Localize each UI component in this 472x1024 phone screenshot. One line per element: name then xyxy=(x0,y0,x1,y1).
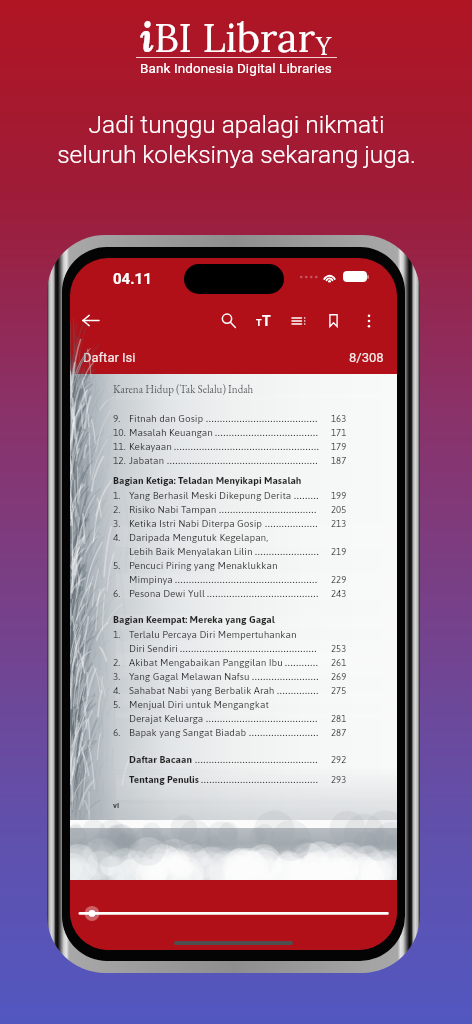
staticText: 6. xyxy=(113,588,121,599)
staticText: 2. xyxy=(113,657,121,668)
staticText: 179 xyxy=(331,441,347,452)
button[interactable]: Contents xyxy=(286,308,311,333)
staticText: Yang Gagal Melawan Nafsu xyxy=(129,671,250,682)
staticText: Kekayaan xyxy=(129,441,172,452)
button[interactable]: Bookmark xyxy=(321,308,346,333)
staticText: Pesona Dewi Yull xyxy=(129,588,205,599)
staticText: 292 xyxy=(331,754,347,765)
staticText: 04.11 xyxy=(113,270,152,288)
staticText: 9. xyxy=(113,413,121,424)
staticText: 6. xyxy=(113,727,121,738)
staticText: 1. xyxy=(113,629,121,640)
staticText: Sahabat Nabi yang Berbalik Arah xyxy=(129,685,275,696)
staticText: Bagian Ketiga: Teladan Menyikapi Masalah xyxy=(113,475,302,486)
staticText: Y xyxy=(316,31,332,62)
staticText: Masalah Keuangan xyxy=(129,427,213,438)
staticText: Menjual Diri untuk Mengangkat xyxy=(129,699,269,710)
staticText: Jabatan xyxy=(129,455,165,466)
staticText: 287 xyxy=(331,727,347,738)
staticText: Diri Sendiri xyxy=(129,643,178,654)
button[interactable]: Search xyxy=(216,308,241,333)
button[interactable]: More options xyxy=(356,308,381,333)
staticText: 10. xyxy=(113,427,126,438)
staticText: vi xyxy=(113,801,119,810)
staticText: Karena Hidup (Tak Selalu) Indah xyxy=(113,382,254,396)
staticText: Risiko Nabi Tampan xyxy=(129,504,217,515)
staticText: 229 xyxy=(331,574,347,585)
staticText: Derajat Keluarga xyxy=(129,713,204,724)
staticText: Terlalu Percaya Diri Mempertuhankan xyxy=(129,629,297,640)
staticText: Bank Indonesia Digital Libraries xyxy=(140,60,332,76)
staticText: 4. xyxy=(113,685,121,696)
staticText: 1. xyxy=(113,490,121,501)
staticText: Daripada Mengutuk Kegelapan, xyxy=(129,532,269,543)
staticText: 2. xyxy=(113,504,121,515)
staticText: 261 xyxy=(331,657,347,668)
staticText: Fitnah dan Gosip xyxy=(129,413,204,424)
staticText: 4. xyxy=(113,532,121,543)
staticText: 243 xyxy=(331,588,347,599)
staticText: 219 xyxy=(331,546,347,557)
staticText: 12. xyxy=(113,455,126,466)
staticText: Pencuci Piring yang Menaklukkan xyxy=(129,560,278,571)
staticText: Tentang Penulis xyxy=(129,774,199,785)
staticText: Ketika Istri Nabi Diterpa Gosip xyxy=(129,518,263,529)
staticText: 3. xyxy=(113,671,121,682)
staticText: Lebih Baik Menyalakan Lilin xyxy=(129,546,253,557)
staticText: 171 xyxy=(331,427,347,438)
staticText: 5. xyxy=(113,699,121,710)
staticText: Daftar Isi xyxy=(83,350,136,365)
staticText: 187 xyxy=(331,455,347,466)
staticText: 205 xyxy=(331,504,347,515)
staticText: 11. xyxy=(113,441,126,452)
staticText: i xyxy=(140,12,154,63)
staticText: 281 xyxy=(331,713,347,724)
staticText: 163 xyxy=(331,413,347,424)
staticText: Akibat Mengabaikan Panggilan Ibu xyxy=(129,657,283,668)
staticText: 213 xyxy=(331,518,347,529)
staticText: Daftar Bacaan xyxy=(129,754,193,765)
staticText: T xyxy=(256,318,262,329)
staticText: 293 xyxy=(331,774,347,785)
button[interactable]: Text size xyxy=(251,308,276,333)
staticText: Yang Berhasil Meski Dikepung Derita xyxy=(129,490,292,501)
staticText: BI Librar xyxy=(154,12,316,63)
staticText: Jadi tunggu apalagi nikmati seluruh kole… xyxy=(57,110,416,169)
staticText: 253 xyxy=(331,643,347,654)
staticText: 8/308 xyxy=(349,350,384,365)
button[interactable]: Back xyxy=(77,307,103,333)
staticText: Mimpinya xyxy=(129,574,173,585)
staticText: 275 xyxy=(331,685,347,696)
staticText: T xyxy=(262,313,271,329)
staticText: Bagian Keempat: Mereka yang Gagal xyxy=(113,614,275,625)
staticText: 3. xyxy=(113,518,121,529)
staticText: Bapak yang Sangat Biadab xyxy=(129,727,247,738)
staticText: 5. xyxy=(113,560,121,571)
staticText: 199 xyxy=(331,490,347,501)
staticText: 269 xyxy=(331,671,347,682)
